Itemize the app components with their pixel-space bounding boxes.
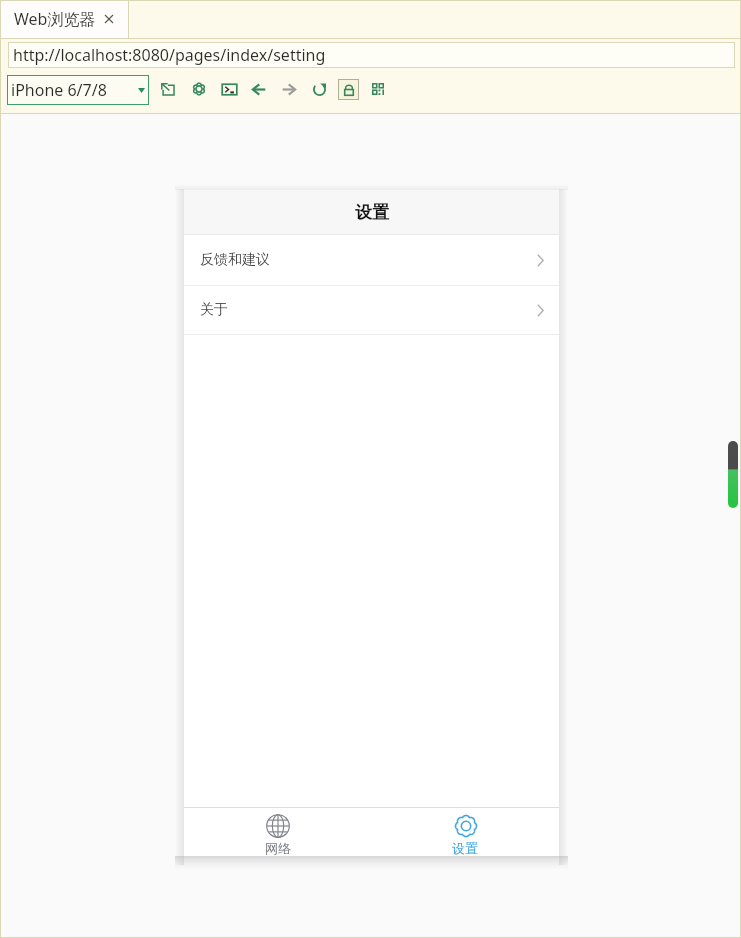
staticText: 反馈和建议 <box>200 251 537 269</box>
staticText: 设置 <box>452 840 478 856</box>
staticText: iPhone 6/7/8 <box>11 79 138 101</box>
staticText: 设置 <box>355 202 389 223</box>
button[interactable]: Forward <box>276 76 302 102</box>
staticText: http://localhost:8080/pages/index/settin… <box>13 44 326 66</box>
button[interactable]: QR code <box>365 76 391 102</box>
button[interactable]: 设置 <box>371 809 559 856</box>
button[interactable]: iPhone 6/7/8 <box>7 75 149 105</box>
button[interactable]: Settings <box>186 76 212 102</box>
staticText: Web浏览器 <box>14 8 96 30</box>
button[interactable]: Scrollbar <box>728 441 738 508</box>
button[interactable]: Back <box>246 76 272 102</box>
button[interactable]: Web浏览器 <box>1 0 128 38</box>
button[interactable]: 网络 <box>184 809 371 856</box>
button[interactable]: Open externally <box>155 76 181 102</box>
button[interactable]: Close tab <box>101 11 117 27</box>
button[interactable]: Console <box>216 76 242 102</box>
button[interactable]: 关于 <box>184 286 559 334</box>
button[interactable]: 反馈和建议 <box>184 235 559 285</box>
button[interactable]: Reload <box>306 76 332 102</box>
button[interactable]: Secure lock <box>338 79 359 100</box>
staticText: 网络 <box>265 840 291 856</box>
staticText: 关于 <box>200 301 537 319</box>
button[interactable]: http://localhost:8080/pages/index/settin… <box>8 42 735 68</box>
